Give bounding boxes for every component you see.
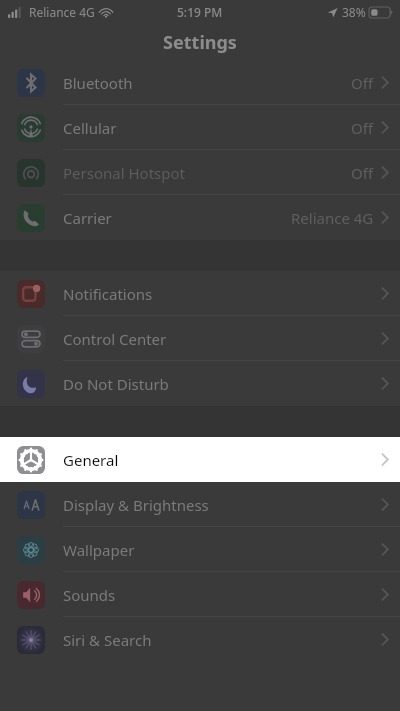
staticText: Wallpaper	[63, 540, 135, 560]
button[interactable]: Bluetooth	[0, 60, 400, 105]
button[interactable]: Cellular	[0, 105, 400, 150]
staticText: Sounds	[63, 585, 116, 605]
button[interactable]: Sounds	[0, 572, 400, 617]
staticText: Off	[351, 163, 374, 183]
button[interactable]: Wallpaper	[0, 527, 400, 572]
staticText: Notifications	[63, 284, 153, 304]
staticText: Settings	[163, 30, 237, 55]
staticText: Cellular	[63, 118, 117, 138]
staticText: Personal Hotspot	[63, 163, 185, 183]
staticText: Siri & Search	[63, 630, 152, 650]
staticText: Reliance 4G	[291, 208, 374, 228]
button[interactable]: Personal Hotspot	[0, 150, 400, 195]
button[interactable]: Carrier	[0, 195, 400, 240]
staticText: Control Center	[63, 329, 167, 349]
button[interactable]: Notifications	[0, 271, 400, 316]
staticText: 5:19 PM	[177, 4, 223, 20]
button[interactable]: Do Not Disturb	[0, 361, 400, 406]
staticText: Display & Brightness	[63, 495, 209, 515]
staticText: 38%	[342, 4, 366, 20]
button[interactable]: Control Center	[0, 316, 400, 361]
staticText: Off	[351, 73, 374, 93]
staticText: Reliance 4G	[29, 4, 95, 20]
button[interactable]: Siri & Search	[0, 617, 400, 662]
staticText: Bluetooth	[63, 73, 133, 93]
button[interactable]: Display & Brightness	[0, 482, 400, 527]
button[interactable]: General	[0, 437, 400, 482]
staticText: Do Not Disturb	[63, 374, 169, 394]
staticText: Carrier	[63, 208, 112, 228]
staticText: Off	[351, 118, 374, 138]
staticText: General	[63, 450, 119, 470]
